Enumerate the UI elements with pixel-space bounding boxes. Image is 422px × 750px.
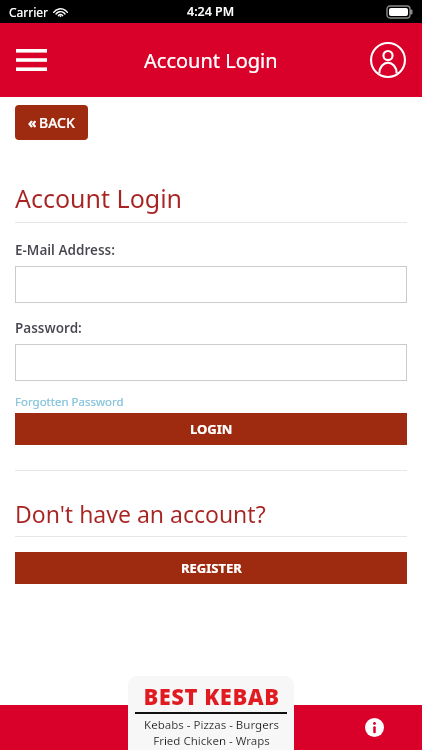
staticText: LOGIN [190, 420, 233, 438]
button[interactable]: Menu [8, 37, 54, 83]
staticText: Account Login [15, 181, 183, 215]
button[interactable]: Forgotten Password [15, 394, 124, 410]
staticText: Account Login [144, 47, 278, 74]
staticText: Fried Chicken - Wraps [153, 733, 270, 749]
staticText: E-Mail Address: [15, 241, 115, 259]
staticText: REGISTER [181, 559, 242, 577]
button[interactable] [15, 266, 407, 303]
button[interactable]: « [15, 105, 88, 140]
button[interactable]: Best Kebab logo [128, 676, 294, 750]
staticText: BEST KEBAB [143, 681, 280, 711]
button[interactable]: Information [360, 713, 388, 741]
button[interactable]: Account [366, 38, 410, 82]
staticText: 4:24 PM [187, 3, 235, 20]
button[interactable] [15, 344, 407, 381]
staticText: Password: [15, 319, 82, 337]
staticText: Kebabs - Pizzas - Burgers [144, 717, 279, 733]
button[interactable]: LOGIN [15, 413, 407, 445]
staticText: Carrier [9, 4, 49, 20]
staticText: BACK [39, 113, 75, 132]
button[interactable]: REGISTER [15, 552, 407, 584]
staticText: Don't have an account? [15, 498, 266, 529]
staticText: « [28, 113, 37, 132]
